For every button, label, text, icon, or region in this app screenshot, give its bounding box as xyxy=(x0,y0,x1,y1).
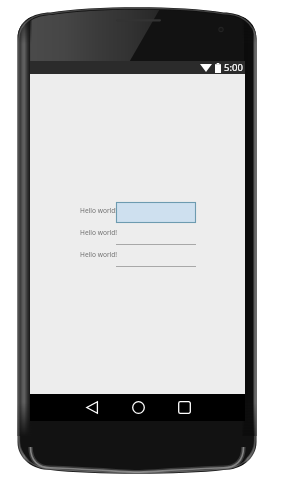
button[interactable]: Recent apps xyxy=(171,394,197,420)
staticText: Hello world! xyxy=(80,250,118,259)
button[interactable] xyxy=(116,224,196,245)
staticText: Hello world! xyxy=(80,228,118,237)
button[interactable]: Back xyxy=(79,394,105,420)
button[interactable]: Home xyxy=(125,394,151,420)
staticText: 5:00 xyxy=(224,61,243,74)
button[interactable] xyxy=(116,202,196,223)
button[interactable] xyxy=(116,246,196,267)
staticText: Hello world! xyxy=(80,206,118,215)
